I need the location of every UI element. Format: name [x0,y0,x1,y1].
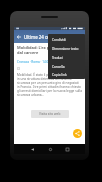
button[interactable]: Cancella [48,62,85,71]
button[interactable]: Copia link [48,71,85,78]
staticText: Cancella [52,65,65,69]
button[interactable]: Visita sito web [31,110,69,118]
staticText: Mobilidad. È stato il primo a essere tra… [17,73,82,97]
staticText: Traduci [52,56,63,60]
button[interactable]: Home [45,144,55,154]
button[interactable]: Back [27,144,37,154]
button[interactable]: Dimensione testo [48,44,85,53]
staticText: Condividi [52,38,66,42]
staticText: Dimensione testo [52,47,79,51]
button[interactable]: Condividi [48,35,85,44]
button[interactable]: Share [73,129,82,138]
staticText: Cronaca · Roma · 14:02 [17,60,51,64]
button[interactable]: Back [14,30,24,43]
button[interactable]: Traduci [48,53,85,62]
staticText: Mobilidad: L'ex presidente esce dal carc… [17,45,82,55]
staticText: Copia link [52,73,67,77]
button[interactable]: Recents [62,144,72,154]
staticText: Visita sito web [39,112,61,116]
staticText: Ultime 24 ore [24,34,52,40]
